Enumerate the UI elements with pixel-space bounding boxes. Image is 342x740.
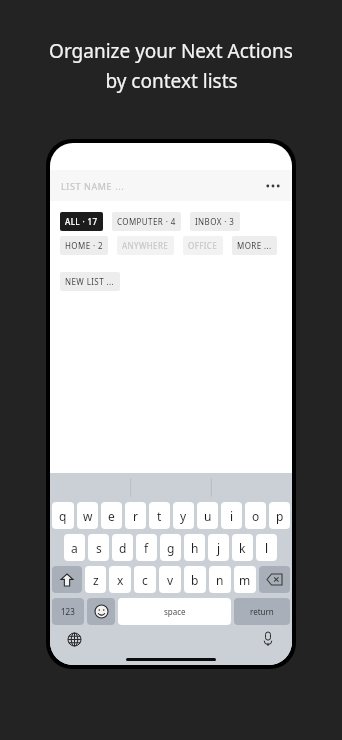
staticText: j <box>217 540 221 556</box>
staticText: HOME · 2 <box>65 240 103 251</box>
button[interactable]: w <box>77 502 98 529</box>
button[interactable]: c <box>134 566 156 593</box>
staticText: LIST NAME ... <box>61 180 125 192</box>
button[interactable]: return <box>234 598 290 625</box>
button[interactable]: OFFICE <box>183 236 223 255</box>
staticText: v <box>167 572 174 588</box>
staticText: o <box>252 508 260 524</box>
staticText: k <box>239 540 246 556</box>
button[interactable]: Dictate <box>258 629 278 649</box>
staticText: l <box>265 540 269 556</box>
button[interactable]: j <box>208 534 229 561</box>
button[interactable]: f <box>136 534 157 561</box>
button[interactable]: INBOX · 3 <box>190 212 240 231</box>
button[interactable]: o <box>245 502 266 529</box>
button[interactable]: t <box>149 502 170 529</box>
staticText: q <box>59 508 67 524</box>
staticText: OFFICE <box>188 240 218 251</box>
staticText: NEW LIST ... <box>65 276 115 287</box>
staticText: g <box>167 540 175 556</box>
staticText: y <box>180 508 187 524</box>
staticText: a <box>71 540 78 556</box>
staticText: MORE ... <box>237 240 272 251</box>
staticText: w <box>83 508 93 524</box>
button[interactable]: MORE ... <box>232 236 277 255</box>
staticText: COMPUTER · 4 <box>117 216 176 227</box>
button[interactable]: b <box>184 566 206 593</box>
staticText: m <box>239 572 251 588</box>
staticText: r <box>133 508 138 524</box>
button[interactable]: l <box>256 534 277 561</box>
staticText: u <box>204 508 212 524</box>
staticText: space <box>164 606 186 617</box>
button[interactable]: v <box>159 566 181 593</box>
button[interactable]: NEW LIST ... <box>60 272 120 291</box>
staticText: f <box>144 540 149 556</box>
staticText: s <box>96 540 102 556</box>
button[interactable]: Emoji <box>87 598 115 625</box>
staticText: x <box>117 572 124 588</box>
staticText: ALL · 17 <box>65 216 98 227</box>
button[interactable]: u <box>197 502 218 529</box>
button[interactable]: a <box>64 534 85 561</box>
button[interactable]: q <box>52 502 74 529</box>
button[interactable]: i <box>221 502 242 529</box>
button[interactable]: s <box>88 534 109 561</box>
button[interactable]: COMPUTER · 4 <box>112 212 181 231</box>
staticText: b <box>191 572 199 588</box>
staticText: by context lists <box>105 68 238 94</box>
staticText: INBOX · 3 <box>195 216 235 227</box>
button[interactable]: LIST NAME ... <box>50 170 292 201</box>
staticText: 123 <box>61 606 75 617</box>
staticText: d <box>119 540 127 556</box>
button[interactable]: ALL · 17 <box>60 212 103 231</box>
staticText: n <box>216 572 224 588</box>
button[interactable]: x <box>109 566 131 593</box>
button[interactable]: n <box>209 566 231 593</box>
button[interactable]: y <box>173 502 194 529</box>
button[interactable]: r <box>125 502 146 529</box>
button[interactable]: 123 <box>52 598 84 625</box>
staticText: return <box>250 606 274 617</box>
button[interactable]: g <box>160 534 181 561</box>
button[interactable]: Change keyboard language <box>64 629 84 649</box>
button[interactable]: Backspace <box>259 566 290 593</box>
button[interactable]: More options <box>262 175 284 197</box>
button[interactable]: e <box>101 502 122 529</box>
button[interactable]: ANYWHERE <box>117 236 174 255</box>
staticText: Organize your Next Actions <box>49 38 293 64</box>
staticText: t <box>157 508 162 524</box>
button[interactable]: HOME · 2 <box>60 236 108 255</box>
button[interactable]: z <box>85 566 106 593</box>
button[interactable]: d <box>112 534 133 561</box>
staticText: c <box>142 572 148 588</box>
button[interactable]: p <box>269 502 290 529</box>
staticText: p <box>276 508 284 524</box>
staticText: z <box>93 572 99 588</box>
staticText: ANYWHERE <box>122 240 169 251</box>
button[interactable]: k <box>232 534 253 561</box>
button[interactable]: h <box>184 534 205 561</box>
staticText: e <box>108 508 115 524</box>
button[interactable]: m <box>234 566 256 593</box>
button[interactable]: Shift <box>52 566 82 593</box>
staticText: h <box>191 540 199 556</box>
staticText: i <box>230 508 234 524</box>
button[interactable]: space <box>118 598 231 625</box>
